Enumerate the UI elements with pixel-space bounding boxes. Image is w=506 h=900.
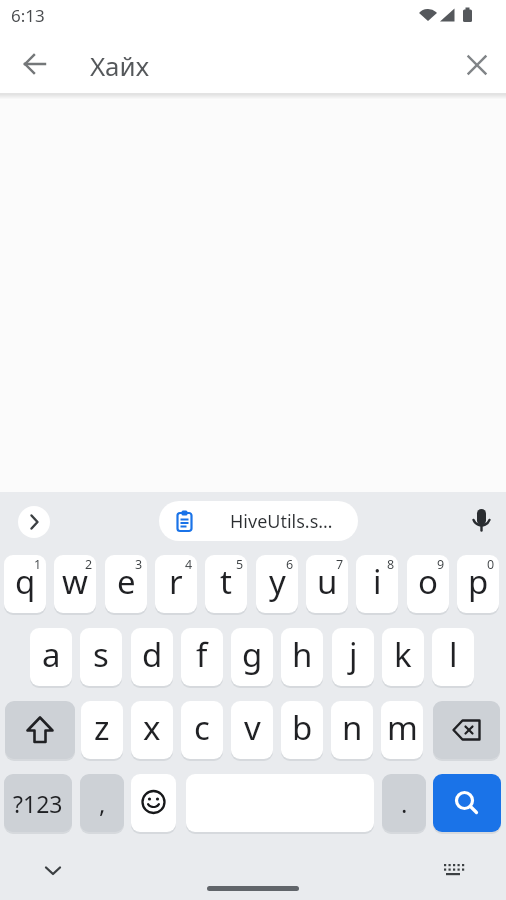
- button[interactable]: [256, 555, 298, 613]
- staticText: t: [220, 559, 232, 604]
- staticText: b: [292, 705, 313, 750]
- staticText: f: [196, 632, 208, 677]
- staticText: ,: [99, 787, 106, 820]
- staticText: 8: [387, 556, 395, 572]
- button[interactable]: [131, 701, 173, 759]
- button[interactable]: [382, 628, 424, 686]
- staticText: i: [373, 559, 382, 604]
- staticText: a: [42, 632, 61, 677]
- button[interactable]: [80, 774, 124, 832]
- staticText: u: [317, 559, 338, 604]
- staticText: m: [387, 705, 418, 750]
- staticText: Хайх: [90, 48, 149, 80]
- staticText: p: [468, 559, 489, 604]
- staticText: d: [142, 632, 163, 677]
- button[interactable]: [433, 774, 501, 832]
- staticText: l: [449, 632, 458, 677]
- button[interactable]: [457, 555, 499, 613]
- button[interactable]: [30, 628, 72, 686]
- staticText: w: [62, 559, 88, 604]
- staticText: 2: [85, 556, 93, 572]
- staticText: g: [242, 632, 263, 677]
- button[interactable]: [181, 628, 223, 686]
- button[interactable]: [381, 701, 423, 759]
- button[interactable]: [4, 774, 72, 832]
- button[interactable]: [433, 701, 500, 759]
- staticText: 3: [135, 556, 143, 572]
- button[interactable]: [4, 555, 46, 613]
- staticText: 6:13: [11, 4, 45, 26]
- button[interactable]: [81, 701, 123, 759]
- button[interactable]: [407, 555, 449, 613]
- staticText: s: [93, 632, 109, 677]
- staticText: q: [15, 559, 36, 604]
- staticText: 4: [185, 556, 193, 572]
- staticText: 9: [437, 556, 445, 572]
- button[interactable]: [459, 499, 503, 543]
- button[interactable]: [281, 628, 323, 686]
- staticText: k: [394, 632, 412, 677]
- staticText: o: [418, 559, 438, 604]
- staticText: .: [401, 787, 408, 820]
- button[interactable]: [181, 701, 223, 759]
- button[interactable]: [382, 774, 426, 832]
- button[interactable]: [455, 43, 499, 87]
- button[interactable]: [54, 555, 96, 613]
- staticText: 6: [286, 556, 294, 572]
- staticText: HiveUtils.s…: [230, 509, 333, 534]
- staticText: e: [117, 559, 136, 604]
- button[interactable]: [231, 628, 273, 686]
- button[interactable]: [231, 701, 273, 759]
- staticText: v: [244, 705, 261, 750]
- staticText: y: [269, 559, 286, 604]
- staticText: 1: [34, 556, 42, 572]
- button[interactable]: [105, 555, 147, 613]
- button[interactable]: [281, 701, 323, 759]
- button[interactable]: HiveUtils.s…: [159, 501, 358, 541]
- button[interactable]: [332, 628, 374, 686]
- button[interactable]: [131, 774, 176, 832]
- button[interactable]: [205, 555, 247, 613]
- staticText: j: [349, 632, 358, 677]
- staticText: r: [169, 559, 183, 604]
- staticText: 7: [336, 556, 344, 572]
- button[interactable]: [155, 555, 197, 613]
- staticText: x: [143, 705, 161, 750]
- staticText: h: [292, 632, 313, 677]
- button[interactable]: [32, 850, 72, 890]
- button[interactable]: [80, 628, 122, 686]
- button[interactable]: [5, 701, 75, 759]
- button[interactable]: [13, 42, 57, 86]
- button[interactable]: [433, 850, 473, 890]
- button[interactable]: [18, 506, 50, 538]
- staticText: c: [194, 705, 210, 750]
- staticText: n: [342, 705, 363, 750]
- button[interactable]: [306, 555, 348, 613]
- staticText: 5: [236, 556, 244, 572]
- staticText: z: [94, 705, 110, 750]
- button[interactable]: [131, 628, 173, 686]
- button[interactable]: [356, 555, 398, 613]
- button[interactable]: [432, 628, 474, 686]
- staticText: 0: [487, 556, 495, 572]
- staticText: ?123: [13, 788, 63, 819]
- button[interactable]: [331, 701, 373, 759]
